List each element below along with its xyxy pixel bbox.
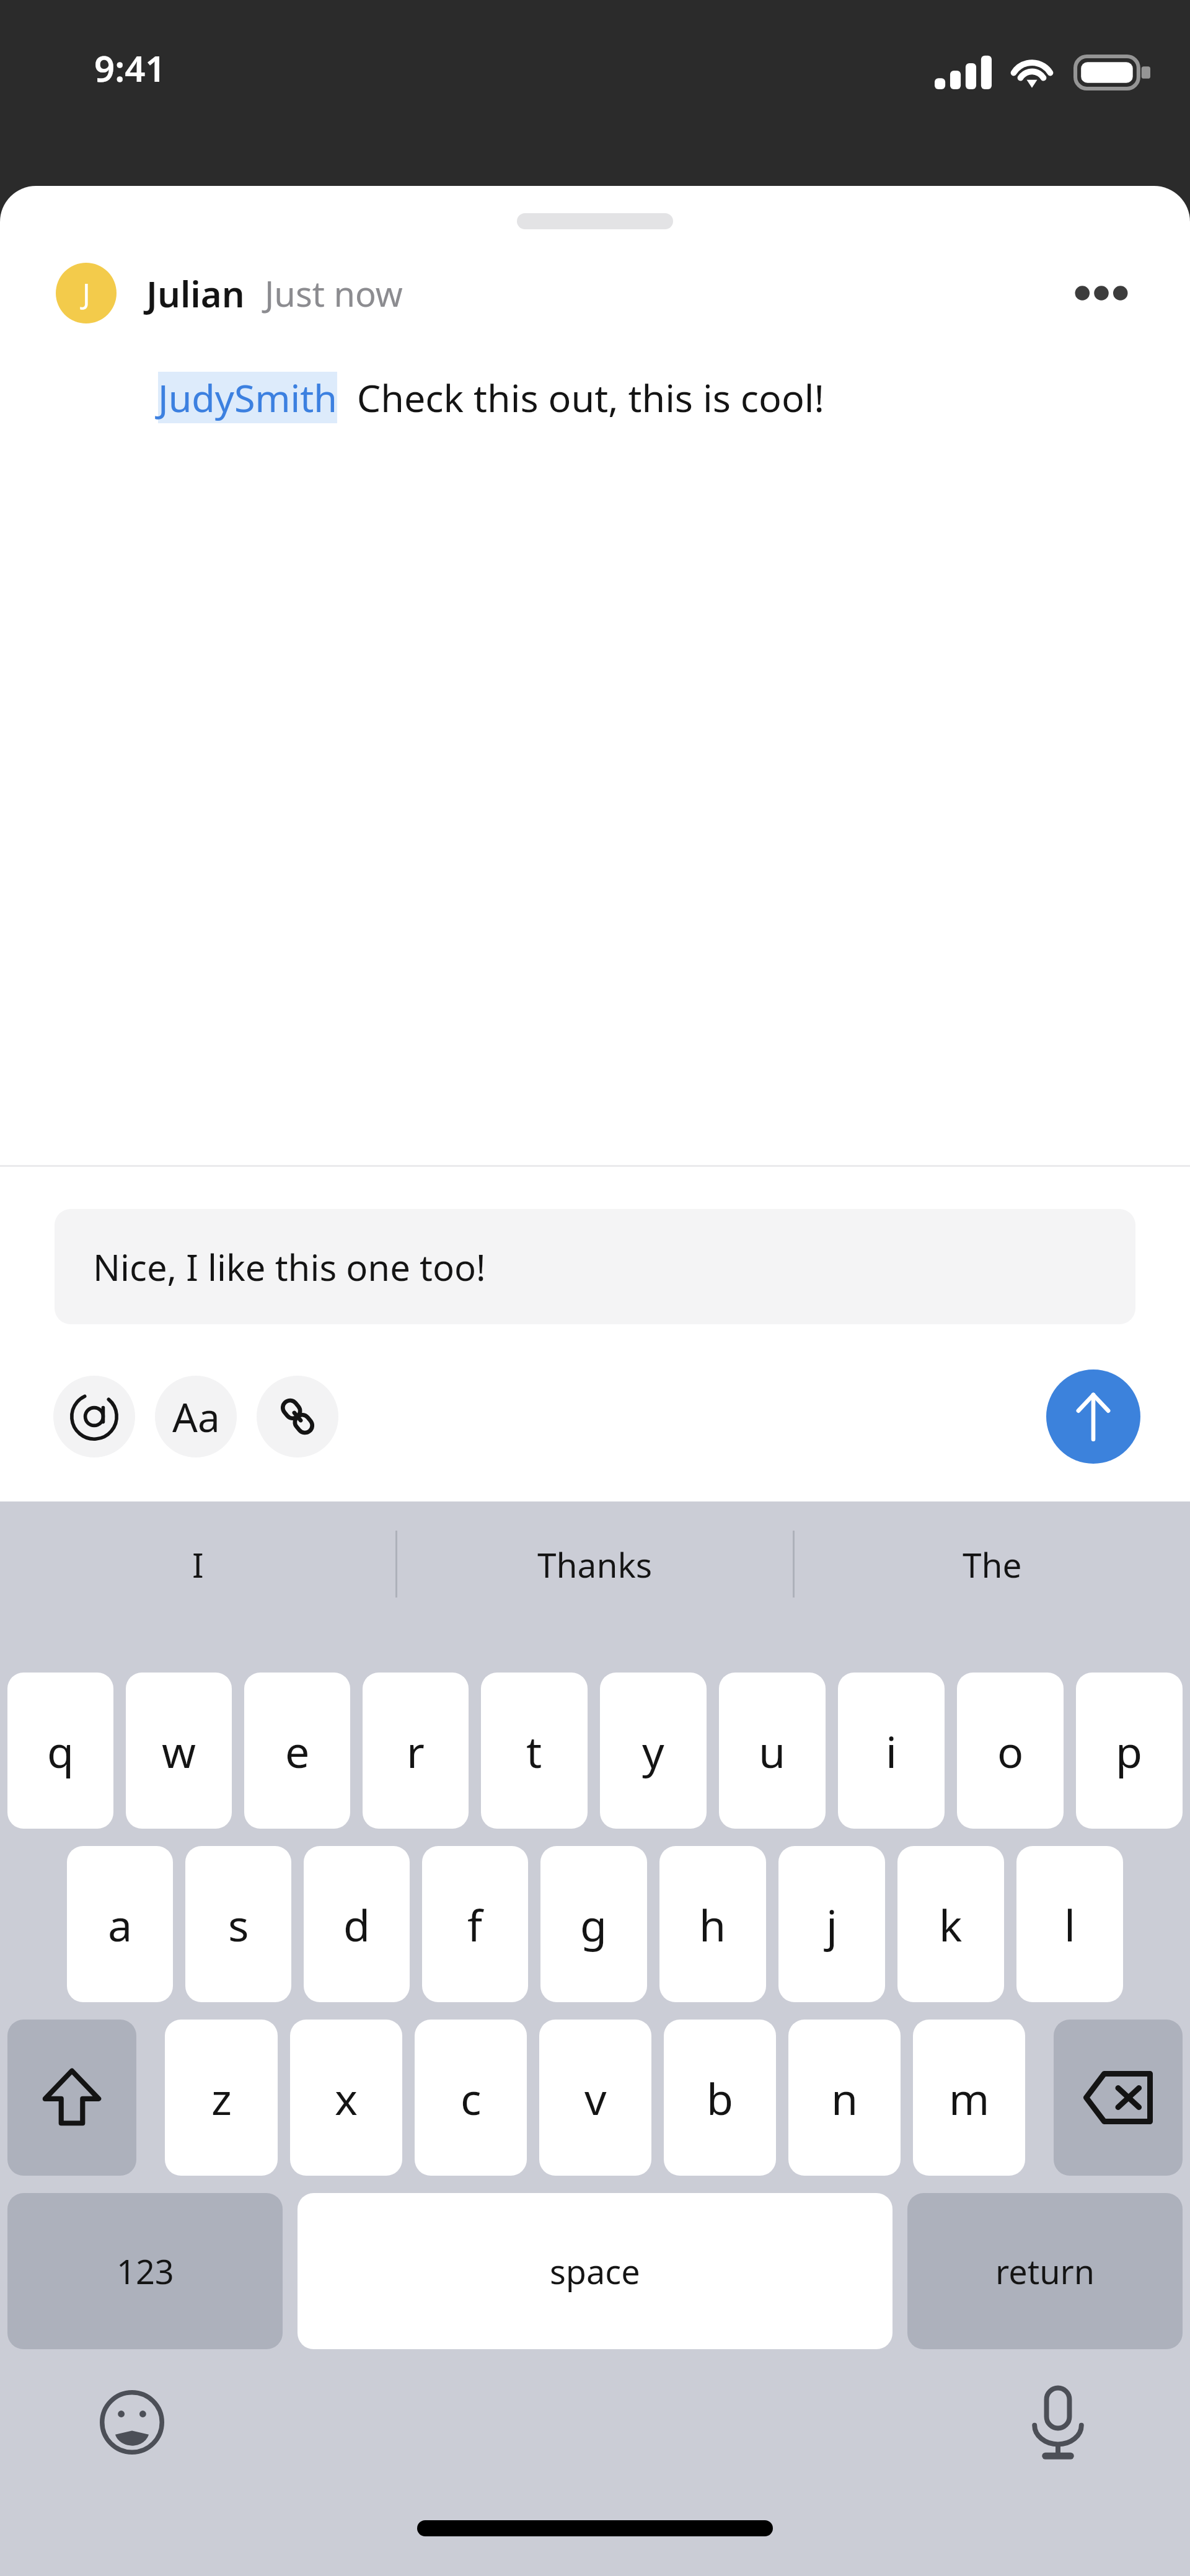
staticText: space bbox=[550, 2248, 640, 2294]
staticText: u bbox=[759, 1721, 786, 1780]
staticText: w bbox=[162, 1721, 196, 1780]
button[interactable]: Thanks bbox=[397, 1501, 793, 1627]
staticText: r bbox=[407, 1721, 425, 1780]
button[interactable]: d bbox=[304, 1846, 410, 2002]
button[interactable]: r bbox=[363, 1673, 469, 1829]
button[interactable]: More options bbox=[1061, 253, 1142, 333]
staticText: q bbox=[47, 1721, 74, 1780]
button[interactable]: e bbox=[244, 1673, 350, 1829]
staticText: e bbox=[285, 1721, 310, 1780]
button[interactable]: h bbox=[659, 1846, 766, 2002]
button[interactable]: k bbox=[897, 1846, 1004, 2002]
button[interactable]: b bbox=[664, 2020, 776, 2176]
button[interactable]: space bbox=[297, 2193, 892, 2349]
button[interactable]: x bbox=[290, 2020, 402, 2176]
staticText: a bbox=[108, 1895, 133, 1954]
staticText: Thanks bbox=[537, 1541, 653, 1588]
staticText: h bbox=[699, 1895, 726, 1954]
button[interactable]: l bbox=[1016, 1846, 1123, 2002]
staticText: Nice, I like this one too! bbox=[93, 1242, 486, 1291]
button[interactable]: f bbox=[422, 1846, 528, 2002]
button[interactable]: Shift bbox=[7, 2020, 136, 2176]
button[interactable]: v bbox=[539, 2020, 651, 2176]
button[interactable]: m bbox=[913, 2020, 1025, 2176]
staticText: k bbox=[939, 1895, 963, 1954]
staticText: return bbox=[995, 2248, 1095, 2294]
staticText: v bbox=[584, 2068, 607, 2127]
button[interactable]: c bbox=[415, 2020, 527, 2176]
button[interactable]: s bbox=[185, 1846, 291, 2002]
staticText: b bbox=[707, 2068, 734, 2127]
staticText: l bbox=[1064, 1895, 1076, 1954]
staticText: 9:41 bbox=[94, 43, 166, 92]
staticText: z bbox=[211, 2068, 232, 2127]
button[interactable]: j bbox=[778, 1846, 885, 2002]
button[interactable]: Mention bbox=[53, 1376, 135, 1457]
button[interactable]: Insert link bbox=[257, 1376, 338, 1457]
staticText: Julian bbox=[146, 269, 245, 318]
button[interactable]: Nice, I like this one too! bbox=[55, 1209, 1135, 1324]
button[interactable]: i bbox=[838, 1673, 945, 1829]
staticText: The bbox=[963, 1541, 1022, 1588]
staticText: i bbox=[886, 1721, 897, 1780]
button[interactable]: u bbox=[719, 1673, 826, 1829]
staticText: y bbox=[642, 1721, 664, 1780]
button[interactable]: Text formatting bbox=[155, 1376, 237, 1457]
staticText: 123 bbox=[117, 2248, 174, 2294]
staticText: x bbox=[335, 2068, 358, 2127]
button[interactable]: y bbox=[600, 1673, 707, 1829]
button[interactable]: q bbox=[7, 1673, 113, 1829]
staticText: Aa bbox=[172, 1390, 220, 1444]
button[interactable]: Dictation bbox=[1018, 2382, 1098, 2463]
button[interactable]: The bbox=[795, 1501, 1190, 1627]
staticText: m bbox=[949, 2068, 990, 2127]
button[interactable]: o bbox=[957, 1673, 1064, 1829]
button[interactable]: I bbox=[0, 1501, 395, 1627]
staticText: p bbox=[1116, 1721, 1143, 1780]
staticText: I bbox=[192, 1541, 204, 1588]
button[interactable]: Backspace bbox=[1054, 2020, 1183, 2176]
staticText: t bbox=[526, 1721, 542, 1780]
button[interactable]: t bbox=[481, 1673, 588, 1829]
button[interactable]: Emoji bbox=[92, 2382, 172, 2463]
staticText: g bbox=[580, 1895, 607, 1954]
staticText: o bbox=[997, 1721, 1024, 1780]
button[interactable]: return bbox=[907, 2193, 1183, 2349]
staticText: s bbox=[228, 1895, 249, 1954]
staticText: J bbox=[82, 274, 90, 313]
button[interactable]: n bbox=[788, 2020, 901, 2176]
staticText: d bbox=[343, 1895, 371, 1954]
staticText: c bbox=[461, 2068, 482, 2127]
button[interactable]: p bbox=[1076, 1673, 1183, 1829]
button[interactable]: w bbox=[126, 1673, 232, 1829]
staticText: n bbox=[831, 2068, 858, 2127]
staticText: f bbox=[467, 1895, 483, 1954]
staticText: j bbox=[826, 1895, 838, 1954]
button[interactable]: a bbox=[67, 1846, 173, 2002]
button[interactable]: Send bbox=[1046, 1369, 1140, 1464]
button[interactable]: 123 bbox=[7, 2193, 283, 2349]
staticText: Just now bbox=[265, 270, 403, 317]
button[interactable]: g bbox=[540, 1846, 647, 2002]
staticText: JudySmith Check this out, this is cool! bbox=[158, 372, 825, 423]
button[interactable]: z bbox=[165, 2020, 278, 2176]
